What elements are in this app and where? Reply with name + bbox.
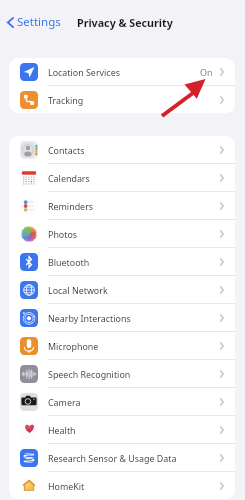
staticText: Nearby Interactions [48, 312, 131, 324]
button[interactable]: Camera [9, 388, 235, 415]
staticText: On [200, 66, 213, 78]
button[interactable]: Settings [0, 11, 67, 33]
button[interactable]: Photos [9, 220, 235, 247]
button[interactable]: HomeKit [9, 472, 235, 499]
button[interactable]: Speech Recognition [9, 360, 235, 387]
button[interactable]: Reminders [9, 192, 235, 219]
staticText: Speech Recognition [48, 368, 131, 380]
button[interactable]: Tracking [9, 86, 235, 113]
other: Annotation arrow [0, 0, 245, 500]
staticText: Reminders [48, 200, 94, 212]
button[interactable]: Calendars [9, 164, 235, 191]
button[interactable]: Research Sensor & Usage Data [9, 444, 235, 471]
staticText: HomeKit [48, 480, 85, 492]
staticText: Calendars [48, 172, 90, 184]
button[interactable]: Contacts [9, 136, 235, 163]
staticText: Contacts [48, 144, 85, 156]
staticText: Research Sensor & Usage Data [48, 452, 177, 464]
button[interactable]: Local Network [9, 276, 235, 303]
staticText: Location Services [48, 66, 120, 78]
staticText: Microphone [48, 340, 99, 352]
button[interactable]: Bluetooth [9, 248, 235, 275]
staticText: Tracking [48, 94, 84, 106]
button[interactable]: Health [9, 416, 235, 443]
button[interactable]: Location Services [9, 58, 235, 85]
staticText: Local Network [48, 284, 108, 296]
button[interactable]: Microphone [9, 332, 235, 359]
staticText: Photos [48, 228, 78, 240]
staticText: Privacy & Security [77, 16, 173, 31]
staticText: Health [48, 424, 76, 436]
staticText: Bluetooth [48, 256, 90, 268]
button[interactable]: Nearby Interactions [9, 304, 235, 331]
staticText: Camera [48, 396, 81, 408]
staticText: Settings [17, 14, 61, 30]
